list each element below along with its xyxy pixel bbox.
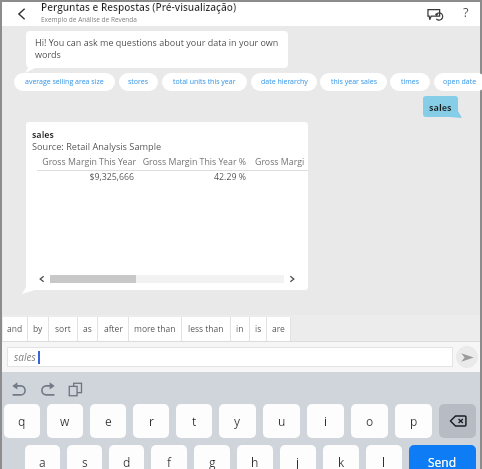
staticText: y <box>234 413 241 429</box>
staticText: sales <box>32 129 54 141</box>
button[interactable]: average selling area size <box>14 73 115 91</box>
staticText: and <box>7 323 23 335</box>
staticText: sales <box>429 101 452 113</box>
staticText: is <box>255 323 262 335</box>
button[interactable]: as <box>78 317 97 341</box>
staticText: sort <box>55 323 71 335</box>
staticText: p <box>410 413 418 429</box>
button[interactable]: times <box>390 73 430 91</box>
staticText: as <box>83 323 92 335</box>
staticText: i <box>324 413 328 429</box>
staticText: Gross Margin This Year <box>255 156 305 168</box>
button[interactable]: is <box>250 317 266 341</box>
button[interactable]: l <box>366 445 402 469</box>
staticText: ? <box>463 3 469 21</box>
staticText: k <box>338 454 345 469</box>
staticText: Hi! You can ask me questions about your … <box>35 36 283 60</box>
staticText: Gross Margin This Year <box>36 156 136 168</box>
staticText: w <box>60 413 70 429</box>
staticText: u <box>278 413 286 429</box>
button[interactable]: Back <box>10 2 34 26</box>
button[interactable]: d <box>109 445 144 469</box>
button[interactable]: k <box>323 445 359 469</box>
staticText: a <box>39 454 46 469</box>
button[interactable]: by <box>28 317 48 341</box>
button[interactable]: Chat history <box>425 4 445 24</box>
button[interactable]: a <box>25 445 60 469</box>
button[interactable]: e <box>90 404 126 438</box>
staticText: Perguntas e Respostas (Pré-visualização) <box>41 0 237 14</box>
staticText: 42.29 % <box>140 171 246 183</box>
button[interactable]: Scroll right <box>284 272 300 285</box>
button[interactable]: Scroll left <box>34 272 50 285</box>
staticText: d <box>123 454 131 469</box>
button[interactable]: Send <box>409 445 476 469</box>
button[interactable]: Send message <box>456 346 478 368</box>
button[interactable]: open date <box>434 73 482 91</box>
staticText: s <box>82 454 88 469</box>
staticText: are <box>272 323 285 335</box>
button[interactable]: j <box>280 445 316 469</box>
staticText: times <box>401 77 420 87</box>
staticText: stores <box>128 77 149 87</box>
staticText: g <box>209 454 216 469</box>
button[interactable]: w <box>47 404 83 438</box>
button[interactable]: i <box>307 404 344 438</box>
staticText: by <box>33 323 43 335</box>
button[interactable]: after <box>98 317 128 341</box>
button[interactable]: o <box>351 404 388 438</box>
button[interactable]: stores <box>119 73 158 91</box>
staticText: Gross Margin This Year % <box>140 156 246 168</box>
button[interactable]: total units this year <box>162 73 247 91</box>
button[interactable]: q <box>4 404 40 438</box>
button[interactable]: u <box>263 404 300 438</box>
button[interactable]: Clipboard <box>64 378 86 400</box>
button[interactable]: r <box>133 404 169 438</box>
button[interactable]: less than <box>182 317 230 341</box>
button[interactable]: f <box>151 445 187 469</box>
button[interactable]: more than <box>129 317 181 341</box>
staticText: in <box>236 323 244 335</box>
button[interactable]: h <box>237 445 273 469</box>
staticText: this year sales <box>331 77 377 87</box>
staticText: e <box>105 413 112 429</box>
button[interactable]: in <box>231 317 249 341</box>
staticText: $9,325,666 <box>36 171 134 183</box>
button[interactable]: g <box>194 445 230 469</box>
button[interactable]: p <box>395 404 432 438</box>
button[interactable]: are <box>267 317 290 341</box>
button[interactable]: date hierarchy <box>251 73 317 91</box>
staticText: f <box>167 454 172 469</box>
staticText: l <box>382 454 386 469</box>
button[interactable]: t <box>176 404 212 438</box>
staticText: Exemplo de Análise de Revenda <box>41 15 137 24</box>
button[interactable]: Redo <box>36 378 58 400</box>
staticText: Send <box>428 454 457 469</box>
staticText: o <box>366 413 374 429</box>
button[interactable]: Undo <box>8 378 30 400</box>
button[interactable]: s <box>67 445 102 469</box>
staticText: j <box>296 454 300 469</box>
staticText: sales <box>14 350 36 364</box>
button[interactable]: Help <box>456 2 476 22</box>
staticText: date hierarchy <box>261 77 308 87</box>
staticText: q <box>18 413 26 429</box>
button[interactable]: Backspace <box>439 404 476 438</box>
staticText: t <box>192 413 197 429</box>
staticText: after <box>104 323 123 335</box>
button[interactable]: y <box>219 404 256 438</box>
staticText: Source: Retail Analysis Sample <box>32 140 162 153</box>
staticText: r <box>149 413 154 429</box>
staticText: average selling area size <box>25 77 104 87</box>
staticText: less than <box>188 323 224 335</box>
staticText: more than <box>134 323 176 335</box>
staticText: total units this year <box>173 77 236 87</box>
staticText: h <box>251 454 259 469</box>
staticText: open date <box>443 77 477 87</box>
button[interactable]: sort <box>49 317 77 341</box>
button[interactable]: and <box>3 317 27 341</box>
button[interactable]: this year sales <box>320 73 387 91</box>
